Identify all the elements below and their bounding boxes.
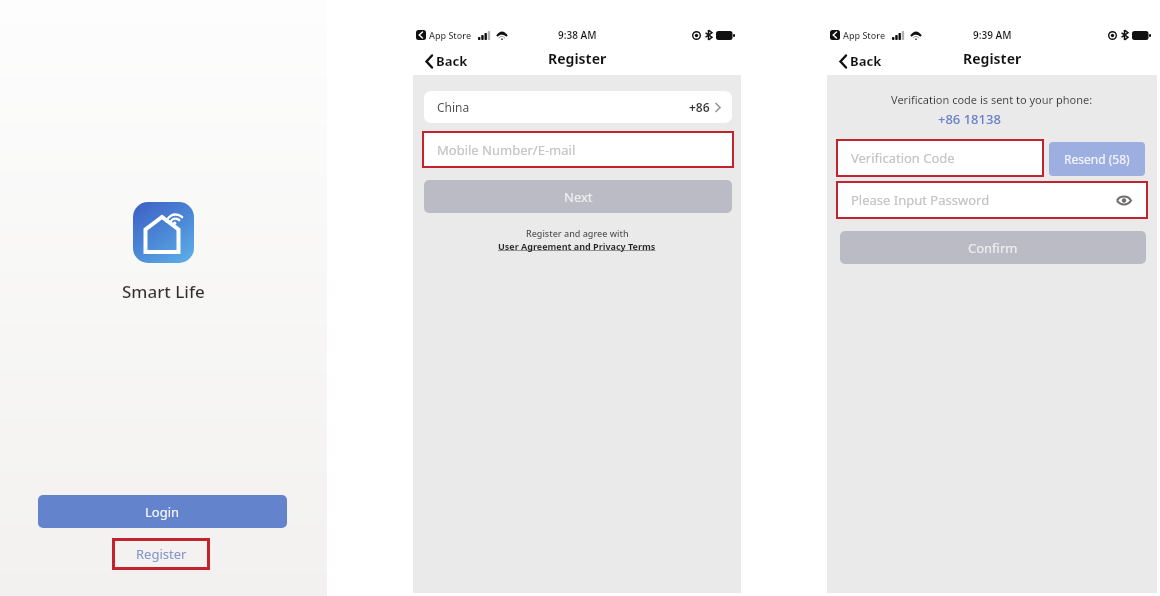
staticText: App Store: [843, 29, 886, 41]
staticText: Register: [136, 545, 187, 563]
button[interactable]: Back: [838, 50, 883, 72]
button[interactable]: Next: [424, 180, 732, 213]
staticText: Mobile Number/E-mail: [437, 141, 576, 159]
button[interactable]: Show password: [1115, 191, 1133, 209]
staticText: +86 18138: [938, 110, 1001, 128]
staticText: Next: [564, 188, 593, 206]
staticText: Smart Life: [122, 280, 205, 303]
staticText: Back: [850, 52, 882, 70]
staticText: Resend (58): [1064, 151, 1130, 167]
staticText: Register: [548, 49, 607, 68]
button[interactable]: Register: [112, 538, 210, 570]
staticText: 9:39 AM: [973, 28, 1012, 42]
button[interactable]: Confirm: [840, 231, 1146, 264]
button[interactable]: Resend (58): [1049, 142, 1145, 176]
staticText: Verification code is sent to your phone:: [891, 92, 1093, 107]
staticText: Login: [145, 503, 180, 521]
staticText: 9:38 AM: [558, 28, 597, 42]
staticText: Confirm: [968, 239, 1018, 257]
staticText: +86: [689, 99, 710, 115]
button[interactable]: Back: [424, 50, 469, 72]
staticText: Register and agree with: [526, 227, 629, 239]
staticText: Please Input Password: [851, 191, 990, 209]
button[interactable]: User Agreement and Privacy Terms: [498, 240, 656, 252]
staticText: Verification Code: [851, 149, 955, 167]
staticText: App Store: [429, 29, 472, 41]
button[interactable]: Login: [38, 495, 287, 528]
staticText: China: [437, 99, 470, 115]
staticText: Back: [436, 52, 468, 70]
button[interactable]: Verification Code: [838, 141, 1042, 175]
button[interactable]: China: [424, 91, 732, 123]
button[interactable]: Please Input Password: [838, 183, 1146, 217]
staticText: Register: [963, 49, 1022, 68]
button[interactable]: Mobile Number/E-mail: [424, 133, 732, 166]
